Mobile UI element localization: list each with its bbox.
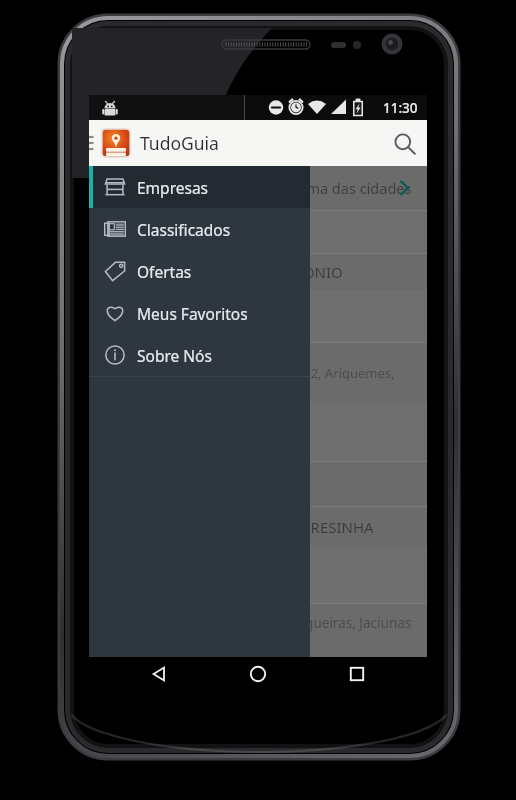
button[interactable]: Meus Favoritos	[89, 292, 310, 334]
staticText: Selecione uma das cidades	[229, 178, 412, 198]
button[interactable]: Ofertas	[89, 250, 310, 292]
button[interactable]	[89, 403, 427, 461]
staticText: Rua das Pitangueiras, Jaciunas	[219, 614, 412, 632]
button[interactable]	[89, 290, 427, 342]
button[interactable]: SANTO ANTONIO	[89, 254, 427, 290]
button[interactable]: Rua das Pitangueiras, Jaciunas	[89, 604, 427, 642]
button[interactable]: Search	[381, 120, 427, 166]
button[interactable]	[89, 462, 427, 506]
staticText: Av. Brasil, Setor 2, Ariquemes,	[213, 364, 395, 382]
button[interactable]: Open navigation drawer	[89, 120, 99, 166]
button[interactable]: Empresas	[89, 166, 310, 208]
button[interactable]: Sobre Nós	[89, 334, 310, 376]
staticText: Sobre Nós	[137, 345, 212, 366]
staticText: Classificados	[137, 219, 231, 240]
button[interactable]: CASA DA TERESINHA	[89, 507, 427, 547]
button[interactable]: Back	[132, 657, 188, 690]
button[interactable]: Selecione uma das cidades	[89, 166, 427, 210]
button[interactable]: Recent apps	[329, 657, 385, 690]
button[interactable]	[89, 211, 427, 253]
staticText: 11:30	[383, 99, 418, 117]
staticText: SANTO ANTONIO	[221, 262, 343, 282]
staticText: Meus Favoritos	[137, 303, 248, 324]
staticText: Empresas	[137, 177, 209, 198]
button[interactable]: Av. Brasil, Setor 2, Ariquemes,	[89, 343, 427, 403]
staticText: CASA DA TERESINHA	[229, 517, 374, 537]
staticText: TudoGuia	[140, 131, 219, 155]
button[interactable]	[89, 547, 427, 603]
button[interactable]: Classificados	[89, 208, 310, 250]
staticText: Ofertas	[137, 261, 192, 282]
button[interactable]: Home	[230, 657, 286, 690]
